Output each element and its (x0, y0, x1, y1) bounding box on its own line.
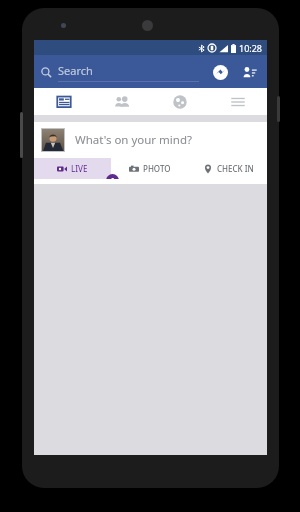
staticText: PHOTO (143, 163, 171, 174)
button[interactable]: Globe (151, 88, 209, 115)
button[interactable]: Friends (93, 88, 151, 115)
button[interactable]: PHOTO (111, 158, 189, 179)
staticText: What's on your mind? (75, 132, 192, 148)
button[interactable]: LIVE (34, 158, 111, 179)
staticText: LIVE (71, 163, 88, 174)
button[interactable]: CHECK IN (189, 158, 267, 179)
button[interactable]: News Feed (34, 88, 93, 115)
button[interactable]: Search (41, 61, 199, 83)
staticText: 10:28 (239, 42, 263, 54)
button[interactable]: Messenger (209, 61, 231, 83)
staticText: 1 (110, 175, 115, 186)
button[interactable]: What's on your mind? (34, 122, 267, 158)
staticText: CHECK IN (217, 163, 254, 174)
button[interactable]: Friend requests (238, 61, 260, 83)
staticText: Search (58, 63, 93, 78)
button[interactable]: Menu (209, 88, 267, 115)
